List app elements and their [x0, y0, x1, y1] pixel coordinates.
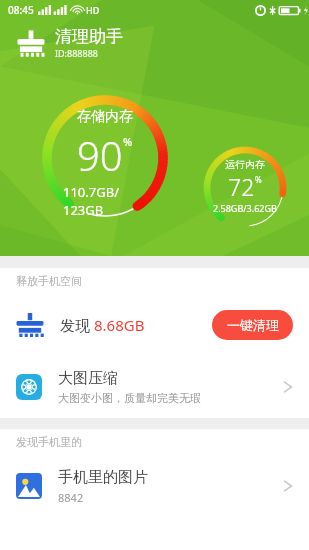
staticText: 2.58GB/3.62GB — [213, 202, 277, 214]
staticText: 运行内存 — [225, 158, 265, 171]
button[interactable]: Compress large images — [0, 356, 309, 418]
staticText: HD — [86, 4, 100, 16]
staticText: 发现 — [60, 315, 94, 335]
staticText: 发现手机里的 — [16, 435, 82, 449]
staticText: 存储内存 — [77, 108, 133, 126]
button[interactable]: Photos on phone — [0, 455, 309, 517]
staticText: 一键清理 — [227, 317, 279, 333]
staticText: % — [123, 134, 133, 149]
staticText: 90 — [77, 128, 123, 182]
staticText: 释放手机空间 — [16, 274, 82, 288]
button[interactable]: 发现 — [0, 294, 309, 356]
staticText: 08:45 — [8, 3, 34, 17]
staticText: 110.7GB/123GB — [63, 183, 147, 219]
staticText: 8842 — [58, 490, 84, 505]
staticText: 8.68GB — [94, 315, 145, 335]
staticText: 手机里的图片 — [58, 468, 148, 487]
button[interactable]: 一键清理 — [212, 310, 293, 340]
staticText: 大图变小图，质量却完美无瑕 — [58, 391, 201, 405]
staticText: 72 — [228, 171, 255, 202]
staticText: 清理助手 — [55, 26, 123, 47]
staticText: % — [255, 174, 262, 185]
staticText: ID:888888 — [55, 47, 98, 59]
staticText: 大图压缩 — [58, 369, 118, 388]
